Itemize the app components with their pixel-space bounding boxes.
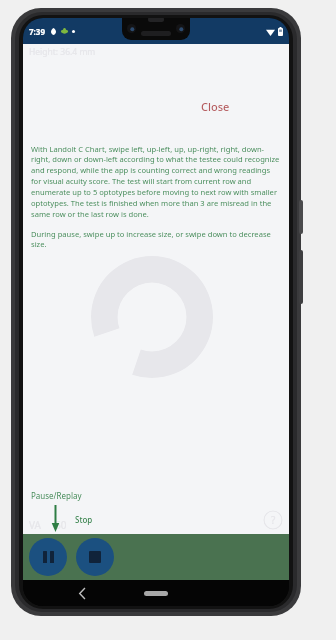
staticText: During pause, swipe up to increase size,… <box>31 229 281 250</box>
staticText: ? <box>271 513 276 527</box>
button[interactable]: Close <box>195 96 236 117</box>
staticText: Stop <box>75 514 93 525</box>
staticText: 60 <box>55 518 67 532</box>
staticText: VA <box>29 518 41 532</box>
staticText: Close <box>201 99 230 114</box>
button[interactable]: Help <box>263 510 283 530</box>
button[interactable]: Home <box>144 591 168 596</box>
staticText: With Landolt C Chart, swipe left, up-lef… <box>31 144 281 220</box>
button[interactable]: Pause or Replay <box>29 538 67 576</box>
staticText: 7:39 <box>29 26 45 37</box>
button[interactable]: Stop <box>76 538 114 576</box>
staticText: Height: 36.4 mm <box>29 46 96 58</box>
button[interactable]: Back <box>71 582 93 604</box>
staticText: Pause/Replay <box>31 490 82 501</box>
